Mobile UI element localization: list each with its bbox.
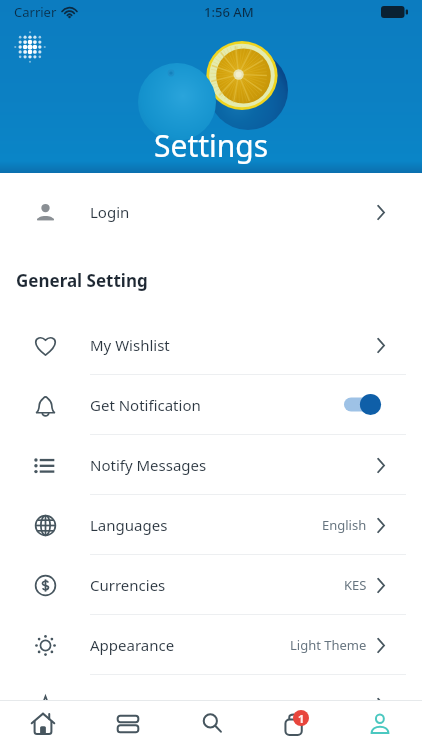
button[interactable]: Menu (15, 32, 45, 62)
button[interactable]: Login (0, 182, 422, 242)
staticText: Languages (90, 515, 168, 535)
button[interactable]: Categories (85, 700, 170, 750)
staticText: English (322, 516, 367, 534)
staticText: Get Notification (90, 395, 201, 415)
staticText: My Wishlist (90, 335, 170, 355)
staticText: Login (90, 202, 130, 222)
staticText: 1 (298, 711, 305, 726)
staticText: Light Theme (290, 636, 367, 654)
button[interactable]: Currencies (0, 555, 422, 615)
button[interactable]: Get Notification (0, 375, 422, 435)
staticText: Appearance (90, 635, 175, 655)
button[interactable]: Cart (254, 700, 338, 750)
staticText: 1:56 AM (204, 3, 254, 21)
staticText: General Setting (16, 269, 148, 292)
button[interactable]: Search (170, 700, 254, 750)
button[interactable]: Home (0, 700, 85, 750)
staticText: KES (344, 576, 367, 594)
button[interactable]: Profile (338, 700, 422, 750)
button[interactable]: Languages (0, 495, 422, 555)
staticText: Currencies (90, 575, 166, 595)
button[interactable]: Notify Messages (0, 435, 422, 495)
staticText: Carrier (14, 3, 57, 21)
button[interactable]: Rate the app (0, 675, 422, 735)
button[interactable]: My Wishlist (0, 315, 422, 375)
button[interactable]: Appearance (0, 615, 422, 675)
staticText: Notify Messages (90, 455, 207, 475)
staticText: Settings (154, 125, 269, 166)
staticText: Rate the app (90, 695, 180, 715)
